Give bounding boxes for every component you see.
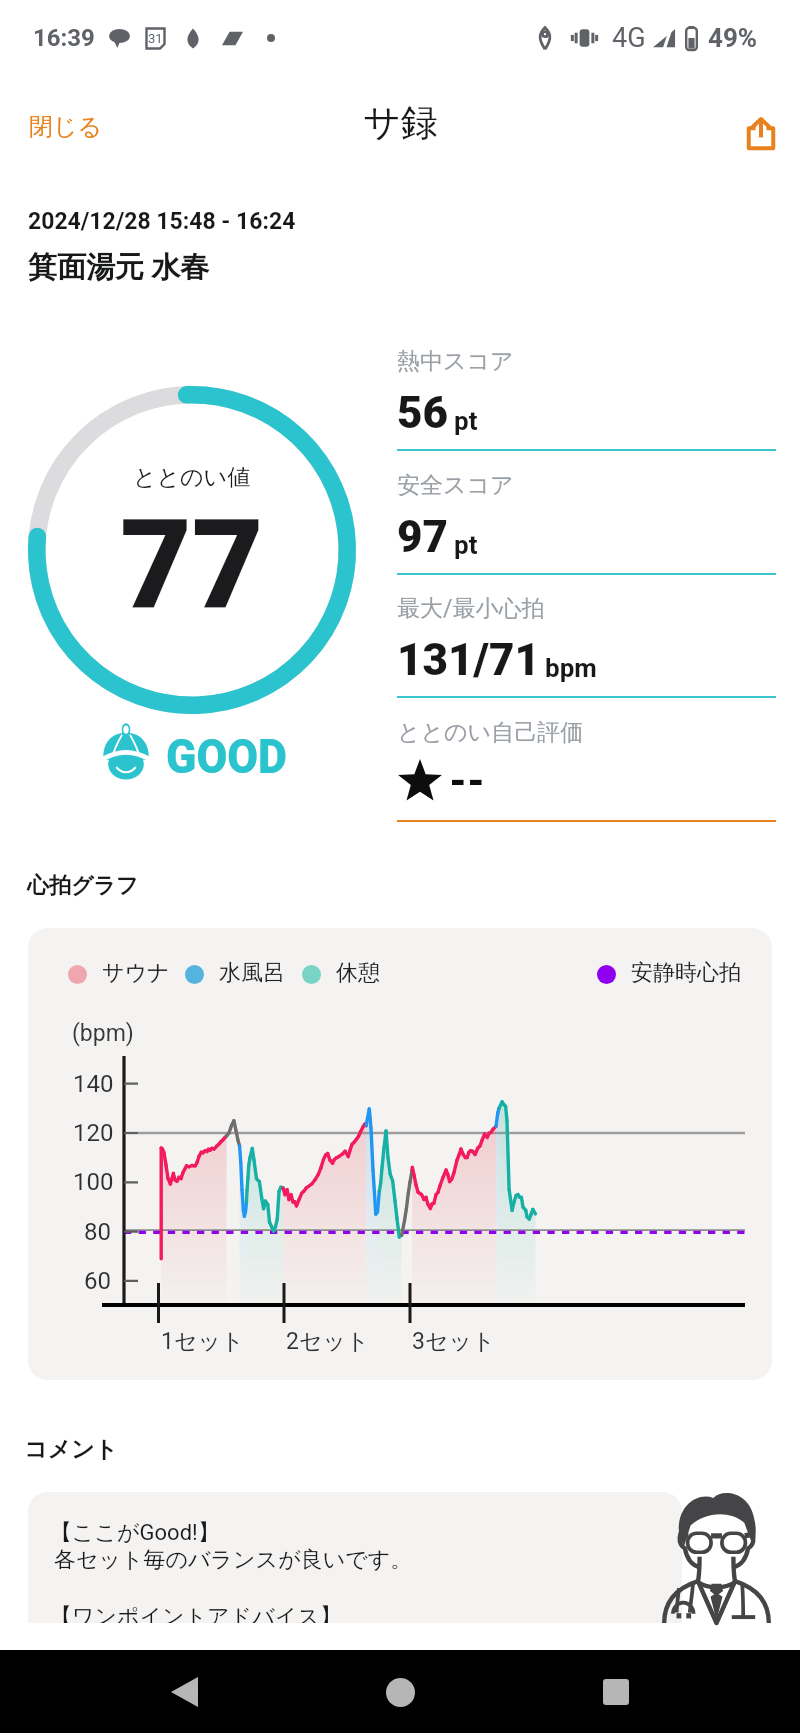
staticText: 閉じる [29, 112, 103, 142]
staticText: 140 [73, 1070, 114, 1098]
staticText: 【ワンポイントアドバイス】 [50, 1603, 342, 1623]
staticText: 56 [397, 387, 449, 439]
staticText: 2セット [286, 1327, 370, 1356]
staticText: 熱中スコア [397, 347, 514, 376]
staticText: 各セット毎のバランスが良いです。 [54, 1546, 413, 1574]
staticText: 2024/12/28 15:48 - 16:24 [28, 208, 296, 235]
staticText: 77 [120, 493, 264, 638]
staticText: 休憩 [336, 959, 380, 987]
staticText: 31 [148, 31, 163, 46]
staticText: pt [454, 406, 478, 436]
staticText: ととのい自己評価 [397, 718, 584, 747]
button[interactable]: Recent apps [584, 1660, 648, 1724]
staticText: GOOD [166, 728, 288, 784]
staticText: 【ここがGood!】 [50, 1519, 220, 1547]
staticText: (bpm) [72, 1020, 134, 1047]
staticText: 60 [84, 1267, 111, 1295]
staticText: -- [449, 758, 485, 805]
staticText: 最大/最小心拍 [397, 594, 545, 623]
staticText: ととのい値 [133, 463, 251, 492]
staticText: 4G [612, 22, 646, 54]
staticText: bpm [545, 653, 597, 683]
button[interactable]: Share [724, 102, 800, 172]
staticText: 120 [73, 1119, 114, 1147]
staticText: 16:39 [33, 24, 95, 52]
staticText: pt [454, 530, 478, 560]
staticText: 97 [397, 511, 449, 563]
button[interactable]: 閉じる [0, 100, 123, 172]
staticText: 80 [84, 1218, 111, 1246]
staticText: 心拍グラフ [27, 872, 139, 900]
button[interactable]: Back [152, 1660, 216, 1724]
staticText: 1セット [161, 1327, 245, 1356]
staticText: 安静時心拍 [631, 959, 741, 987]
button[interactable]: Home [368, 1660, 432, 1724]
staticText: サウナ [102, 959, 170, 987]
staticText: 水風呂 [219, 959, 285, 987]
staticText: 箕面湯元 水春 [28, 249, 210, 286]
staticText: サ録 [363, 99, 438, 146]
staticText: 3セット [412, 1327, 496, 1356]
staticText: コメント [24, 1435, 119, 1464]
staticText: 131/71 [397, 634, 540, 686]
staticText: 安全スコア [397, 471, 514, 500]
staticText: 100 [73, 1168, 114, 1196]
staticText: 49% [708, 23, 758, 53]
